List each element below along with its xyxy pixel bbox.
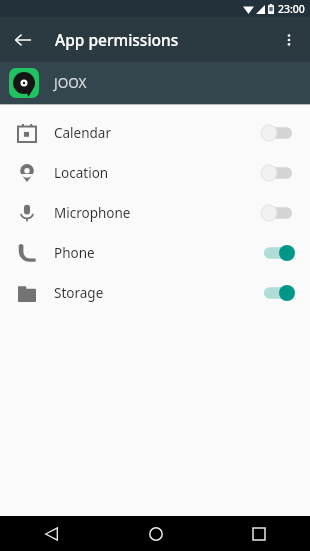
button[interactable]: JOOX: [0, 62, 310, 104]
button[interactable]: Recent apps: [207, 516, 310, 551]
button[interactable]: More options: [272, 23, 306, 57]
button[interactable]: Storage: [0, 273, 310, 313]
staticText: JOOX: [54, 74, 87, 92]
staticText: Phone: [54, 244, 258, 262]
button[interactable]: Phone: [0, 233, 310, 273]
staticText: 23:00: [278, 2, 305, 16]
button[interactable]: Microphone: [0, 193, 310, 233]
staticText: Storage: [54, 284, 258, 302]
button[interactable]: Location: [0, 153, 310, 193]
button[interactable]: Back: [0, 516, 104, 551]
staticText: Microphone: [54, 204, 258, 222]
button[interactable]: Location permission toggle: [258, 158, 298, 188]
button[interactable]: Storage permission toggle: [258, 278, 298, 308]
staticText: Calendar: [54, 124, 258, 142]
button[interactable]: Phone permission toggle: [258, 238, 298, 268]
button[interactable]: Home: [104, 516, 207, 551]
staticText: App permissions: [55, 29, 179, 50]
staticText: Location: [54, 164, 258, 182]
button[interactable]: Calendar permission toggle: [258, 118, 298, 148]
button[interactable]: Microphone permission toggle: [258, 198, 298, 228]
button[interactable]: Calendar: [0, 113, 310, 153]
button[interactable]: Back: [6, 23, 40, 57]
